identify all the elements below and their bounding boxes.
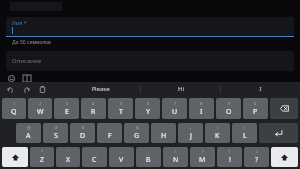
button[interactable]: + (178, 123, 203, 143)
staticText: + (189, 125, 192, 130)
button[interactable]: : (109, 147, 134, 167)
button[interactable]: Shift (2, 147, 28, 167)
button[interactable]: Enter (259, 123, 298, 143)
staticText: ( (217, 125, 219, 130)
button[interactable]: Emoji (5, 75, 17, 82)
staticText: Имя * (12, 20, 27, 27)
button[interactable]: 3 (54, 98, 79, 119)
button[interactable]: ' (82, 147, 107, 167)
staticText: P (253, 107, 258, 117)
staticText: R (91, 107, 96, 117)
staticText: 1 (13, 101, 16, 106)
staticText: $ (82, 125, 85, 130)
button[interactable]: / (244, 147, 269, 167)
staticText: K (215, 131, 220, 141)
staticText: 8 (200, 101, 203, 106)
button[interactable]: ; (136, 147, 161, 167)
button[interactable]: ! (163, 147, 188, 167)
staticText: " (68, 149, 70, 154)
button[interactable]: Sticker (21, 75, 33, 82)
button[interactable]: Redo (21, 84, 32, 95)
staticText: 3 (66, 101, 69, 106)
button[interactable]: " (56, 147, 80, 167)
button[interactable]: Clipboard (37, 84, 48, 95)
button[interactable]: Backspace (270, 98, 298, 119)
staticText: ! (175, 149, 177, 154)
staticText: Hi (178, 85, 184, 93)
staticText: ! (229, 155, 231, 165)
staticText: @ (27, 125, 31, 130)
button[interactable]: @ (16, 123, 41, 143)
button[interactable]: 1 (2, 98, 26, 119)
staticText: F (108, 131, 112, 141)
staticText: * (41, 149, 44, 154)
button[interactable]: Описание (6, 51, 294, 71)
button[interactable]: Hi (141, 82, 220, 96)
staticText: L (243, 131, 247, 141)
staticText: 1 (228, 149, 231, 154)
staticText: Please (91, 85, 110, 93)
button[interactable]: & (124, 123, 149, 143)
staticText: E (65, 107, 69, 117)
staticText: J (190, 131, 192, 141)
staticText: / (256, 149, 258, 154)
staticText: M (199, 155, 206, 165)
staticText: I (200, 107, 203, 117)
staticText: W (37, 107, 44, 117)
staticText: N (173, 155, 179, 165)
staticText: ; (148, 149, 150, 154)
staticText: 4 (92, 101, 95, 106)
staticText: ) (244, 125, 246, 130)
button[interactable]: 7 (162, 98, 187, 119)
staticText: S (54, 131, 58, 141)
button[interactable]: 5 (108, 98, 133, 119)
staticText: # (55, 125, 58, 130)
staticText: Q (11, 107, 17, 117)
staticText: O (226, 107, 232, 117)
button[interactable]: 8 (189, 98, 214, 119)
button[interactable]: Please (60, 82, 140, 96)
staticText: G (134, 131, 140, 141)
button[interactable]: I (221, 82, 300, 96)
staticText: 7 (174, 101, 177, 106)
staticText: T (119, 107, 123, 117)
button[interactable]: Undo (5, 84, 16, 95)
staticText: & (136, 125, 139, 130)
staticText: 9 (228, 101, 231, 106)
button[interactable]: - (151, 123, 176, 143)
staticText: H (161, 131, 167, 141)
staticText: _ (109, 125, 111, 130)
staticText: До 50 символов (12, 39, 51, 46)
button[interactable]: 6 (135, 98, 160, 119)
button[interactable]: ? (190, 147, 215, 167)
button[interactable]: Shift (271, 147, 298, 167)
staticText: I (259, 85, 262, 93)
staticText: : (121, 149, 123, 154)
staticText: Описание (12, 57, 41, 65)
button[interactable]: $ (70, 123, 95, 143)
staticText: B (146, 155, 151, 165)
staticText: ? (202, 149, 204, 154)
button[interactable]: ) (232, 123, 257, 143)
staticText: V (119, 155, 124, 165)
staticText: ? (255, 155, 259, 165)
staticText: C (92, 155, 97, 165)
staticText: - (163, 125, 165, 130)
staticText: 0 (254, 101, 257, 106)
staticText: D (80, 131, 86, 141)
button[interactable]: Имя * (6, 17, 294, 37)
button[interactable]: 0 (243, 98, 268, 119)
button[interactable]: 9 (216, 98, 241, 119)
staticText: 5 (120, 101, 123, 106)
staticText: ' (94, 149, 95, 154)
button[interactable]: 1 (217, 147, 242, 167)
button[interactable]: ( (205, 123, 230, 143)
staticText: 6 (147, 101, 150, 106)
staticText: Y (146, 107, 150, 117)
button[interactable]: * (30, 147, 54, 167)
button[interactable]: 2 (28, 98, 52, 119)
button[interactable]: 4 (81, 98, 106, 119)
staticText: Z (40, 155, 45, 165)
button[interactable]: # (43, 123, 68, 143)
button[interactable]: _ (97, 123, 122, 143)
